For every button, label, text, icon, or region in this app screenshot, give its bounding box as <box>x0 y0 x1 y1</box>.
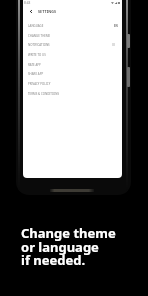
staticText: TERMS & CONDITIONS <box>28 92 60 96</box>
button[interactable]: PRIVACY POLICY <box>23 79 122 88</box>
staticText: PRIVACY POLICY <box>28 82 51 86</box>
staticText: LANGUAGE <box>28 24 44 28</box>
button[interactable]: TERMS & CONDITIONS <box>23 89 122 98</box>
button[interactable]: RATE APP <box>23 60 122 69</box>
button[interactable]: NOTIFICATIONS <box>23 40 122 49</box>
button[interactable]: CHANGE THEME <box>23 31 122 40</box>
staticText: CHANGE THEME <box>28 34 51 38</box>
staticText: NOTIFICATIONS <box>28 43 50 47</box>
button[interactable]: LANGUAGE <box>23 21 122 30</box>
button[interactable]: Back <box>27 7 35 15</box>
staticText: SHARE APP <box>28 72 44 76</box>
staticText: Change theme or language if needed. <box>21 224 116 268</box>
staticText: RATE APP <box>28 63 41 67</box>
staticText: SETTINGS <box>38 9 57 14</box>
button[interactable]: WRITE TO US <box>23 50 122 59</box>
button[interactable]: SHARE APP <box>23 69 122 78</box>
staticText: EN <box>114 24 118 28</box>
staticText: WRITE TO US <box>28 53 46 57</box>
staticText: 8:43 <box>24 1 31 5</box>
